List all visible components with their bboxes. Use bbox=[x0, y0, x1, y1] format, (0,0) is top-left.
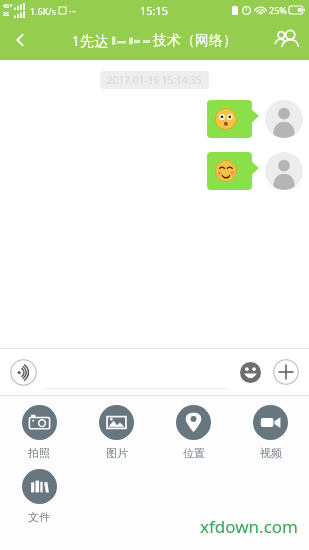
button[interactable]: More bbox=[271, 357, 301, 387]
staticText: 拍照 bbox=[28, 446, 50, 460]
staticText: 视频 bbox=[260, 446, 282, 460]
staticText: 图片 bbox=[106, 446, 128, 460]
staticText: 15:15 bbox=[140, 3, 169, 18]
button[interactable]: 位置 bbox=[155, 405, 232, 460]
button[interactable]: Avatar bbox=[265, 100, 303, 138]
staticText: xfdown.com bbox=[200, 515, 299, 538]
button[interactable]: 拍照 bbox=[0, 405, 78, 460]
staticText: 4G+ bbox=[3, 3, 13, 10]
staticText: 1.6K/s bbox=[30, 5, 56, 17]
button[interactable]: Back bbox=[0, 20, 40, 60]
button[interactable] bbox=[44, 355, 228, 389]
button[interactable] bbox=[207, 152, 259, 190]
staticText: ··· bbox=[69, 5, 77, 17]
button[interactable]: 文件 bbox=[0, 469, 78, 524]
staticText: 25% bbox=[269, 4, 287, 16]
button[interactable]: Avatar bbox=[265, 152, 303, 190]
staticText: 2017-01-16 15:14:35 bbox=[107, 73, 202, 87]
staticText: 技术（网络） bbox=[153, 32, 237, 50]
button[interactable] bbox=[207, 100, 259, 138]
button[interactable]: 视频 bbox=[232, 405, 309, 460]
button[interactable]: Group members bbox=[265, 20, 309, 60]
staticText: 位置 bbox=[183, 446, 205, 460]
button[interactable]: Emoji bbox=[236, 358, 264, 386]
button[interactable]: 图片 bbox=[78, 405, 155, 460]
button[interactable]: Voice message bbox=[8, 357, 38, 387]
staticText: 1先达 bbox=[72, 31, 109, 50]
staticText: 2G bbox=[3, 11, 10, 18]
staticText: 文件 bbox=[28, 510, 50, 524]
